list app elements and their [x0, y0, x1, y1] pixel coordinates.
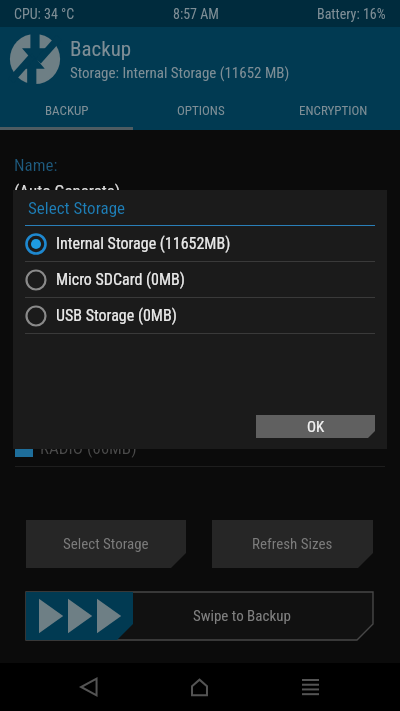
- button[interactable]: Micro SDCard (0MB): [13, 262, 387, 298]
- staticText: Swipe to Backup: [193, 607, 291, 625]
- staticText: USB Storage (0MB): [56, 306, 177, 325]
- staticText: Refresh Sizes: [252, 535, 333, 553]
- button[interactable]: Swipe to Backup: [26, 592, 373, 640]
- button[interactable]: Refresh Sizes: [212, 520, 373, 568]
- staticText: Name:: [14, 155, 58, 175]
- button[interactable]: OPTIONS: [134, 91, 267, 130]
- staticText: Battery: 16%: [317, 6, 386, 22]
- staticText: RADIO (66MB): [40, 438, 137, 458]
- button[interactable]: Select Storage: [26, 520, 186, 568]
- staticText: (Auto Generate): [14, 181, 121, 201]
- button[interactable]: Back: [34, 663, 144, 711]
- staticText: Select Storage: [28, 198, 125, 218]
- button[interactable]: Recent apps: [255, 663, 366, 711]
- staticText: 8:57 AM: [173, 6, 219, 22]
- button[interactable]: Home: [144, 663, 255, 711]
- staticText: OK: [307, 418, 325, 436]
- staticText: Backup: [70, 37, 132, 62]
- staticText: Micro SDCard (0MB): [56, 270, 185, 289]
- button[interactable]: Internal Storage (11652MB): [13, 226, 387, 262]
- staticText: Storage: Internal Storage (11652 MB): [70, 64, 290, 82]
- button[interactable]: BACKUP: [0, 91, 134, 130]
- button[interactable]: OK: [256, 415, 375, 438]
- button[interactable]: USB Storage (0MB): [13, 298, 387, 334]
- staticText: Select Storage: [63, 535, 149, 553]
- button[interactable]: ENCRYPTION: [267, 91, 400, 130]
- staticText: CPU: 34 °C: [14, 6, 75, 22]
- staticText: ENCRYPTION: [299, 103, 368, 118]
- staticText: Internal Storage (11652MB): [56, 234, 231, 253]
- staticText: BACKUP: [45, 103, 89, 118]
- staticText: OPTIONS: [177, 103, 225, 118]
